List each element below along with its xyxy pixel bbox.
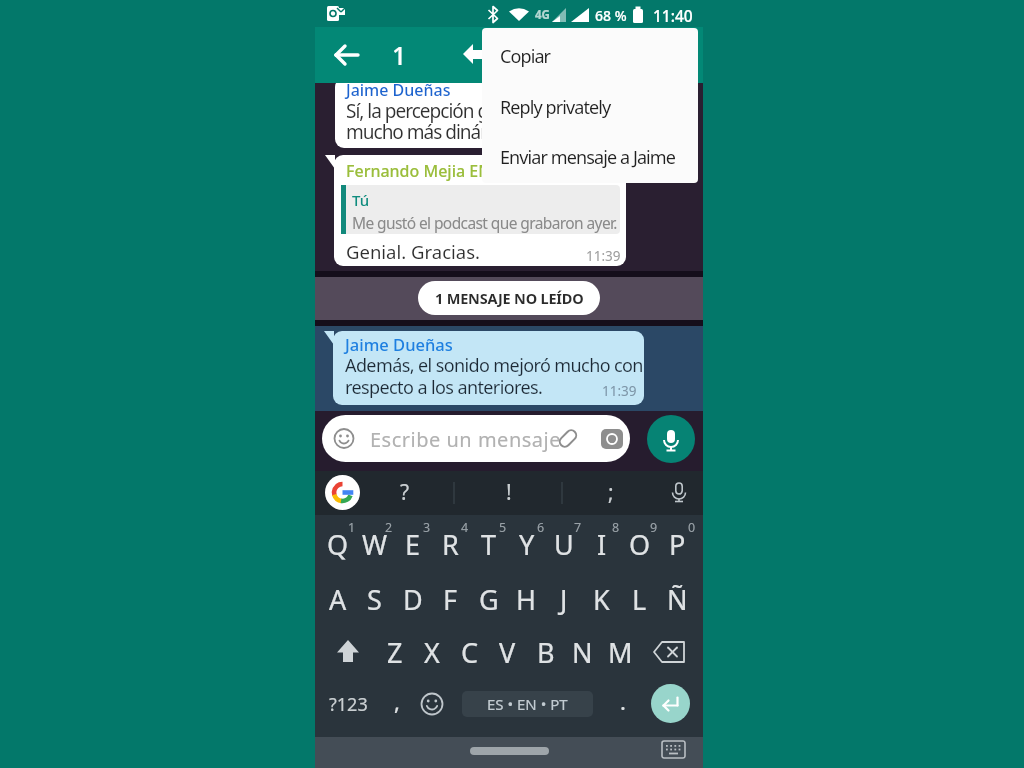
staticText: I bbox=[597, 526, 607, 563]
button[interactable]: Reply privately bbox=[482, 82, 698, 132]
button[interactable]: K bbox=[583, 579, 620, 619]
button[interactable] bbox=[329, 633, 367, 671]
staticText: N bbox=[572, 634, 593, 671]
staticText: Sí, la percepción general es que bbox=[346, 98, 596, 124]
staticText: 8 bbox=[612, 519, 620, 535]
button[interactable]: L bbox=[621, 579, 658, 619]
button[interactable]: A bbox=[319, 579, 356, 619]
staticText: respecto a los anteriores. bbox=[345, 375, 543, 400]
staticText: Reply privately bbox=[500, 95, 611, 120]
staticText: ; bbox=[608, 478, 614, 507]
button[interactable]: Enviar mensaje a Jaime bbox=[482, 132, 698, 182]
button[interactable] bbox=[418, 690, 446, 718]
staticText: U bbox=[554, 526, 574, 563]
button[interactable]: C bbox=[451, 632, 488, 672]
button[interactable]: T bbox=[470, 524, 507, 564]
staticText: mucho más dinámico. bbox=[346, 119, 524, 145]
staticText: ! bbox=[506, 478, 512, 507]
button[interactable]: 1 MENSAJE NO LEÍDO bbox=[418, 281, 600, 315]
button[interactable]: Copiar bbox=[482, 31, 698, 81]
button[interactable]: ? bbox=[345, 475, 465, 509]
button[interactable]: J bbox=[545, 579, 582, 619]
staticText: 11:39 bbox=[586, 247, 621, 265]
button[interactable] bbox=[335, 78, 649, 148]
staticText: S bbox=[367, 581, 382, 618]
button[interactable]: Z bbox=[376, 632, 413, 672]
button[interactable]: , bbox=[337, 684, 457, 718]
button[interactable] bbox=[470, 747, 549, 755]
staticText: 3 bbox=[423, 519, 431, 535]
button[interactable]: ?123 bbox=[288, 687, 408, 721]
button[interactable]: V bbox=[489, 632, 526, 672]
button[interactable]: W bbox=[356, 524, 393, 564]
staticText: ? bbox=[400, 478, 410, 507]
staticText: F bbox=[443, 581, 458, 618]
staticText: , bbox=[394, 686, 400, 716]
staticText: 1 MENSAJE NO LEÍDO bbox=[435, 288, 584, 308]
staticText: E bbox=[405, 526, 421, 563]
button[interactable] bbox=[325, 475, 360, 510]
staticText: Tú bbox=[352, 190, 370, 210]
staticText: J bbox=[560, 581, 568, 618]
button[interactable]: . bbox=[563, 684, 683, 718]
button[interactable]: ; bbox=[551, 475, 671, 509]
staticText: T bbox=[481, 526, 497, 563]
staticText: D bbox=[403, 581, 423, 618]
button[interactable]: ! bbox=[449, 475, 569, 509]
staticText: 6 bbox=[537, 519, 545, 535]
staticText: O bbox=[629, 526, 651, 563]
staticText: M bbox=[608, 634, 633, 671]
staticText: Jaime Dueñas bbox=[345, 333, 453, 355]
button[interactable]: B bbox=[527, 632, 564, 672]
staticText: B bbox=[537, 634, 555, 671]
staticText: Escribe un mensaje bbox=[370, 426, 561, 453]
button[interactable] bbox=[647, 415, 695, 463]
staticText: Z bbox=[387, 634, 403, 671]
button[interactable]: R bbox=[432, 524, 469, 564]
button[interactable]: M bbox=[602, 632, 639, 672]
staticText: H bbox=[516, 581, 537, 618]
button[interactable] bbox=[334, 155, 626, 266]
staticText: 1 bbox=[392, 38, 407, 72]
staticText: K bbox=[593, 581, 610, 618]
button[interactable]: F bbox=[432, 579, 469, 619]
button[interactable]: Y bbox=[508, 524, 545, 564]
staticText: G bbox=[479, 581, 499, 618]
button[interactable] bbox=[333, 331, 644, 405]
staticText: Genial. Gracias. bbox=[346, 239, 480, 264]
button[interactable] bbox=[322, 415, 630, 462]
staticText: 5 bbox=[499, 519, 507, 535]
staticText: X bbox=[424, 634, 440, 671]
staticText: ?123 bbox=[329, 692, 368, 717]
button[interactable]: D bbox=[394, 579, 431, 619]
staticText: A bbox=[329, 581, 347, 618]
button[interactable]: I bbox=[583, 524, 620, 564]
button[interactable]: E bbox=[394, 524, 431, 564]
staticText: Y bbox=[519, 526, 535, 563]
button[interactable]: X bbox=[413, 632, 450, 672]
button[interactable]: H bbox=[508, 579, 545, 619]
staticText: V bbox=[499, 634, 516, 671]
staticText: Ñ bbox=[667, 581, 688, 618]
staticText: 9 bbox=[650, 519, 658, 535]
button[interactable] bbox=[651, 684, 690, 723]
staticText: 1 bbox=[348, 519, 356, 535]
button[interactable]: O bbox=[621, 524, 658, 564]
button[interactable]: N bbox=[564, 632, 601, 672]
button[interactable]: Q bbox=[319, 524, 356, 564]
staticText: 4G bbox=[535, 7, 550, 23]
button[interactable] bbox=[327, 35, 367, 75]
button[interactable] bbox=[651, 634, 689, 670]
button[interactable]: G bbox=[470, 579, 507, 619]
button[interactable]: S bbox=[356, 579, 393, 619]
staticText: R bbox=[442, 526, 459, 563]
button[interactable]: Ñ bbox=[659, 579, 696, 619]
staticText: Además, el sonido mejoró mucho con bbox=[345, 353, 643, 378]
staticText: 2 bbox=[385, 519, 393, 535]
button[interactable]: U bbox=[545, 524, 582, 564]
staticText: 11:39 bbox=[602, 382, 637, 400]
staticText: ES • EN • PT bbox=[487, 694, 568, 714]
button[interactable]: P bbox=[659, 524, 696, 564]
button[interactable]: ES • EN • PT bbox=[462, 691, 593, 717]
staticText: Enviar mensaje a Jaime bbox=[500, 145, 676, 170]
